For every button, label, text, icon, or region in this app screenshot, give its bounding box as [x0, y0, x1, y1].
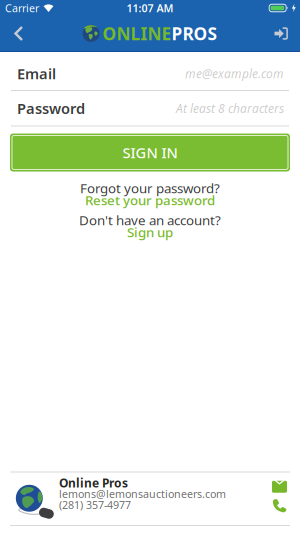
button[interactable]: Sign in — [264, 16, 298, 51]
button[interactable]: Back — [4, 16, 34, 51]
staticText: Don't have an account? — [79, 211, 221, 229]
button[interactable]: Email Online Pros — [272, 481, 287, 493]
staticText: PROS — [171, 22, 217, 45]
button[interactable]: Reset your password — [85, 191, 215, 209]
button[interactable]: Call Online Pros — [272, 499, 286, 513]
staticText: ONLINE — [102, 22, 171, 45]
staticText: Email — [17, 64, 56, 83]
button[interactable]: Sign up — [127, 223, 173, 241]
button[interactable]: SIGN IN — [10, 133, 290, 171]
staticText: lemons@lemonsauctioneers.com — [59, 487, 226, 501]
staticText: SIGN IN — [122, 143, 177, 162]
staticText: Reset your password — [85, 191, 215, 209]
staticText: me@example.com — [185, 65, 284, 81]
staticText: Password — [17, 98, 85, 118]
staticText: Sign up — [127, 223, 173, 241]
staticText: 11:07 AM — [126, 1, 173, 15]
staticText: At least 8 characters — [176, 100, 284, 116]
staticText: Forgot your password? — [80, 179, 220, 197]
staticText: (281) 357-4977 — [59, 498, 131, 512]
staticText: Online Pros — [59, 475, 128, 491]
staticText: Carrier — [5, 1, 39, 15]
